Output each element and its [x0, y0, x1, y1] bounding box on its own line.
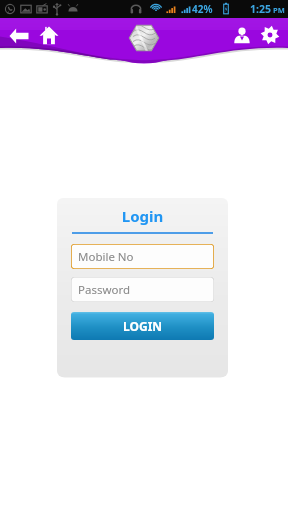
button[interactable]: Settings	[256, 21, 284, 49]
staticText: Mobile No	[78, 249, 134, 265]
button[interactable]: App logo	[128, 22, 160, 54]
button[interactable]: Profile	[228, 21, 256, 49]
button[interactable]: Mobile No	[71, 244, 214, 269]
staticText: PM	[273, 5, 285, 15]
staticText: 42%	[192, 2, 213, 16]
button[interactable]: Password	[71, 277, 214, 302]
button[interactable]: LOGIN	[71, 312, 214, 340]
staticText: 1:25	[250, 2, 271, 16]
button[interactable]: Back	[4, 21, 34, 51]
staticText: Password	[78, 282, 131, 298]
staticText: Login	[57, 206, 228, 226]
button[interactable]: Home	[34, 21, 64, 51]
staticText: LOGIN	[123, 318, 163, 334]
